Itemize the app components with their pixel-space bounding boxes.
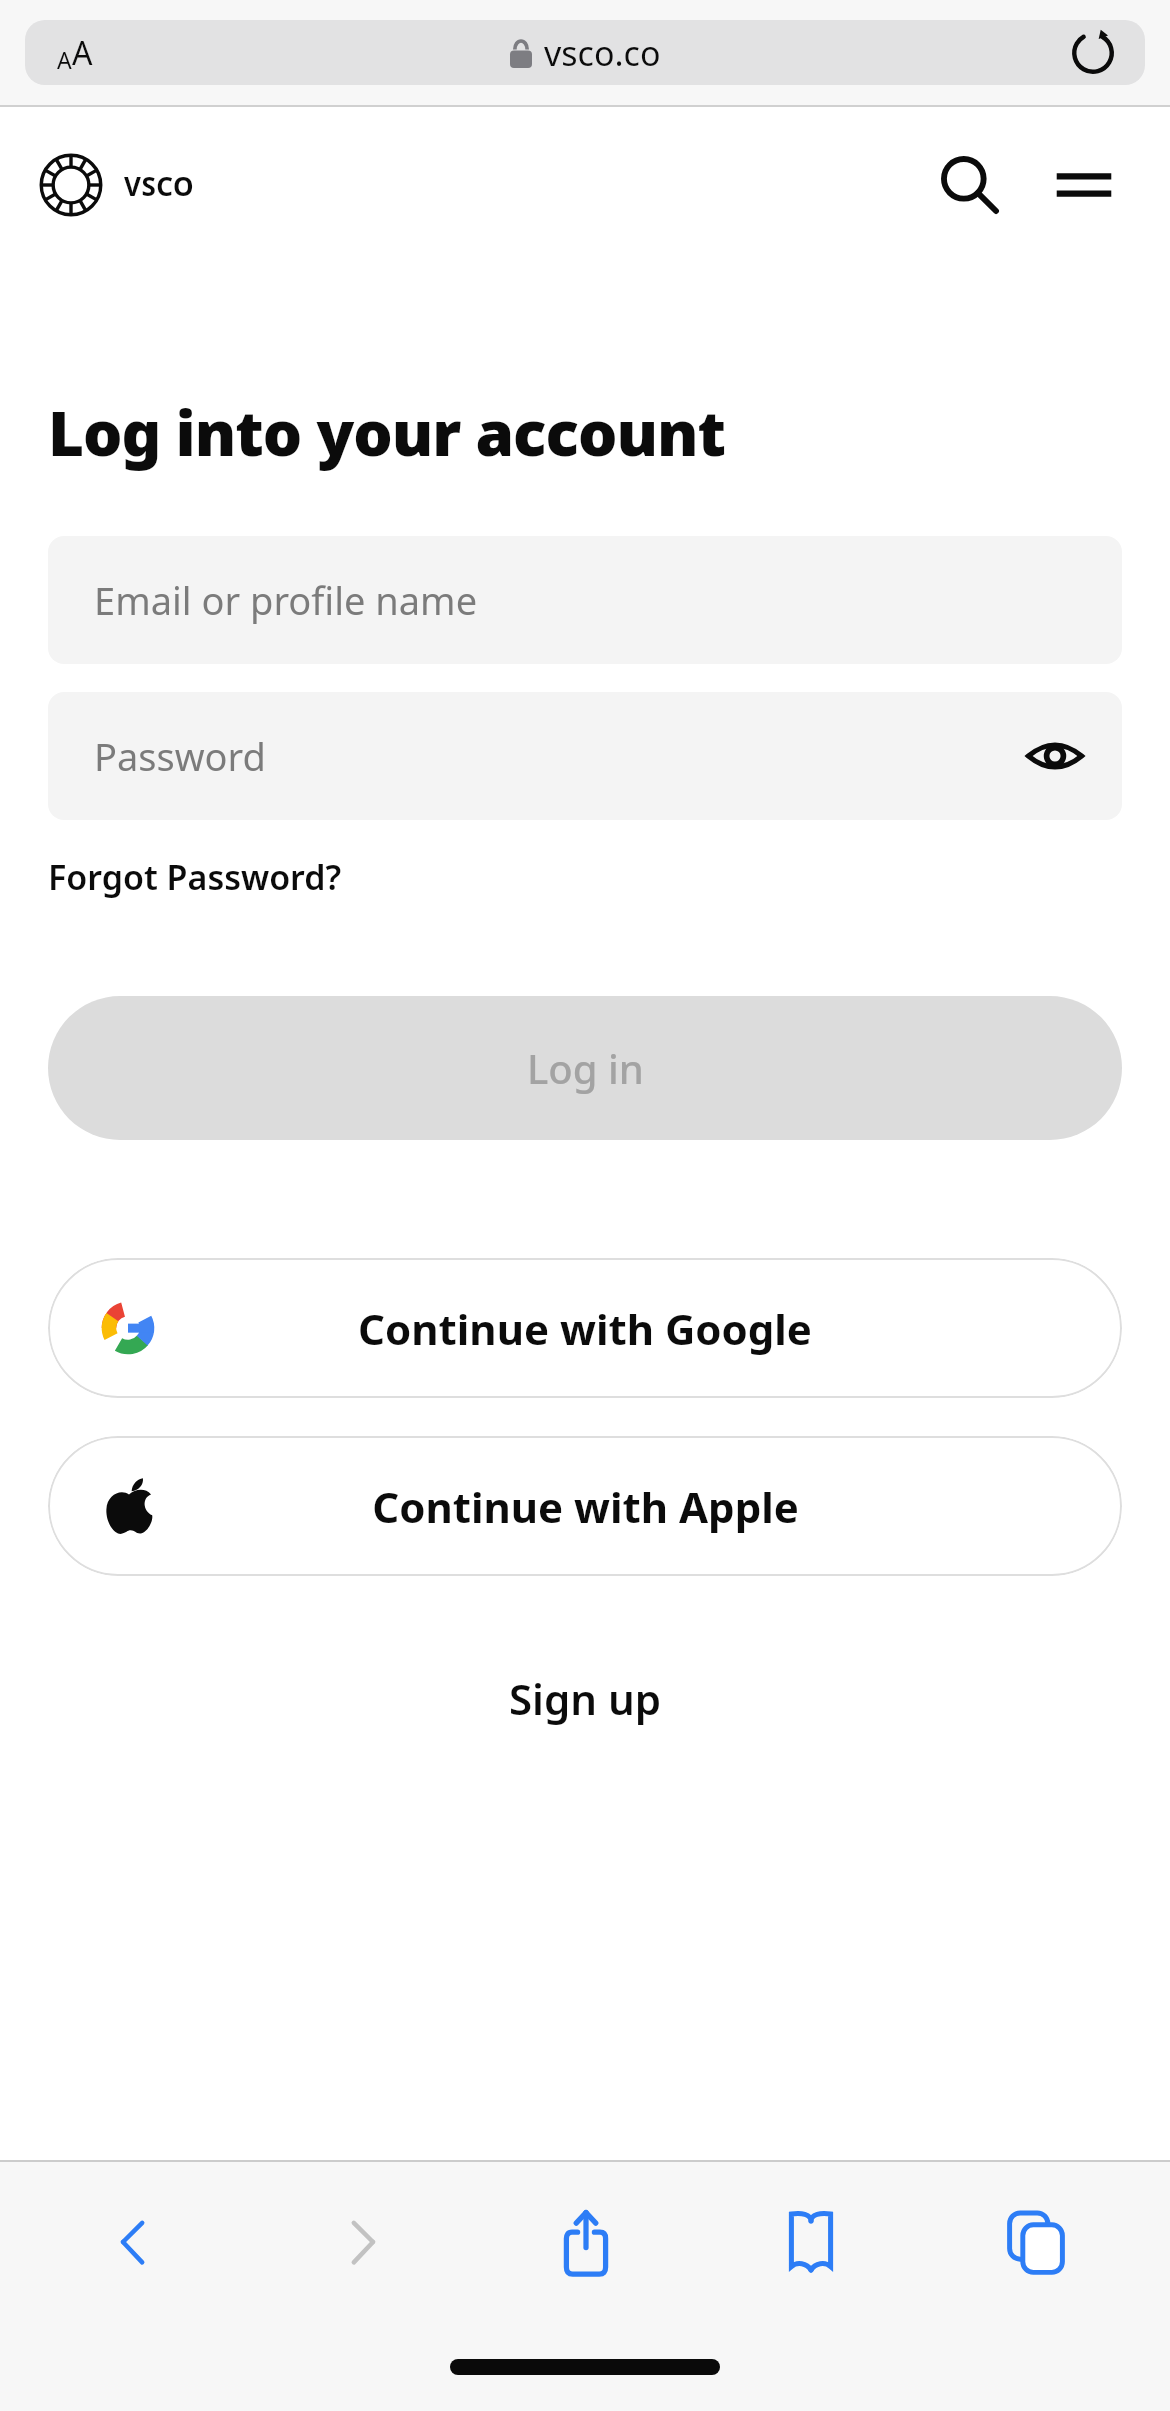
button[interactable]: Sign up	[489, 1662, 682, 1735]
button[interactable]: Share	[473, 2162, 698, 2322]
button[interactable]: Continue with Google	[48, 1258, 1122, 1398]
button[interactable]: Bookmarks	[698, 2162, 923, 2322]
staticText: Log into your account	[48, 390, 725, 474]
staticText: Continue with Apple	[372, 1478, 799, 1535]
staticText: VSCO	[124, 168, 194, 203]
button[interactable]: Page settings	[25, 20, 1145, 85]
staticText: vsco.co	[544, 30, 661, 76]
staticText: A	[57, 44, 72, 75]
button[interactable]: Continue with Apple	[48, 1436, 1122, 1576]
button[interactable]: Show password	[1022, 723, 1088, 789]
button[interactable]: Email or profile name	[48, 536, 1122, 664]
staticText: Email or profile name	[94, 574, 478, 626]
staticText: Log in	[527, 1041, 644, 1095]
button[interactable]: Reload	[1067, 27, 1119, 79]
staticText: Continue with Google	[358, 1300, 812, 1357]
button[interactable]: Back	[22, 2162, 248, 2322]
staticText: Forgot Password?	[48, 854, 342, 900]
button[interactable]: VSCO	[40, 154, 202, 216]
staticText: A	[72, 31, 93, 75]
button[interactable]: Forward	[248, 2162, 473, 2322]
staticText: Password	[94, 730, 266, 782]
button[interactable]: Tabs	[923, 2162, 1148, 2322]
button[interactable]: Password	[48, 692, 1122, 820]
button[interactable]: Search	[924, 139, 1016, 231]
button[interactable]: Menu	[1038, 139, 1130, 231]
staticText: Sign up	[509, 1670, 662, 1727]
button[interactable]: Page settings	[57, 31, 93, 75]
button[interactable]: Forgot Password?	[48, 854, 342, 900]
button[interactable]: Log in	[48, 996, 1122, 1140]
